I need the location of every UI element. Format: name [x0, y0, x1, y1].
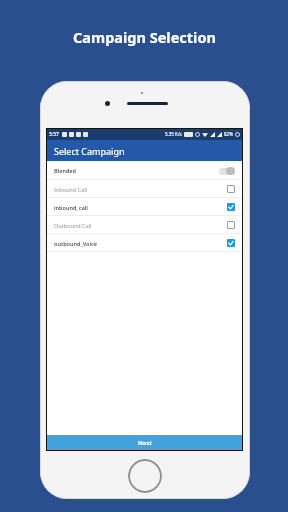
button[interactable]: Next [46, 435, 243, 451]
button[interactable]: Outbound Call [46, 216, 243, 234]
button[interactable]: Select Campaign [46, 140, 243, 161]
staticText: Outbound Call [54, 222, 92, 229]
staticText: Blended [54, 167, 77, 174]
staticText: Select Campaign [54, 145, 125, 157]
staticText: 5.55 K/s [165, 131, 182, 137]
button[interactable]: Home [128, 459, 162, 493]
staticText: inbound_call [54, 204, 88, 211]
button[interactable]: Blended [46, 161, 243, 180]
staticText: Inbound Call [54, 186, 87, 193]
button[interactable]: outbound_Voice [46, 234, 243, 252]
button[interactable]: Inbound Call [46, 180, 243, 198]
staticText: Next [138, 439, 152, 447]
staticText: 3:57 [49, 131, 59, 138]
staticText: 82% [224, 131, 233, 137]
button[interactable]: inbound_call [46, 198, 243, 216]
staticText: outbound_Voice [54, 240, 98, 247]
staticText: Campaign Selection [73, 27, 216, 47]
